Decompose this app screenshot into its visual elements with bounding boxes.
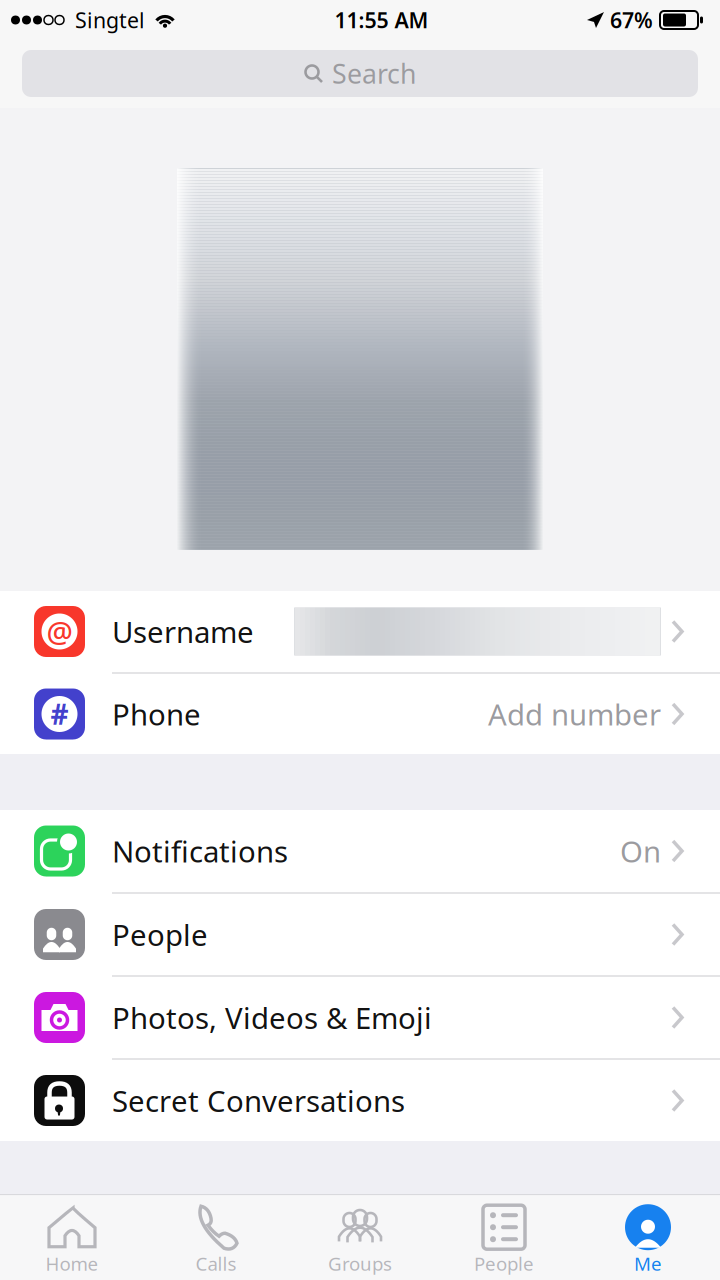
staticText: # (50, 695, 68, 733)
staticText: Secret Conversations (112, 1081, 405, 1120)
staticText: Search (332, 56, 416, 91)
button[interactable]: Home (0, 1195, 144, 1280)
staticText: Phone (112, 694, 201, 733)
button[interactable]: Notifications (0, 810, 720, 892)
staticText: Photos, Videos & Emoji (112, 998, 432, 1037)
staticText: @ (46, 612, 72, 651)
staticText: 11:55 AM (334, 6, 428, 34)
staticText: Home (45, 1251, 98, 1276)
button[interactable]: Groups (288, 1195, 432, 1280)
staticText: On (620, 831, 661, 870)
staticText: Notifications (112, 831, 288, 870)
button[interactable]: Photos, Videos & Emoji (0, 977, 720, 1058)
button[interactable]: People (432, 1195, 576, 1280)
button[interactable]: Calls (144, 1195, 288, 1280)
staticText: Me (634, 1251, 662, 1276)
button[interactable]: Secret Conversations (0, 1060, 720, 1141)
staticText: Calls (195, 1251, 236, 1276)
staticText: Add number (488, 694, 661, 733)
button[interactable]: @ (0, 591, 720, 672)
staticText: 67% (610, 6, 653, 34)
button[interactable]: # (0, 674, 720, 754)
staticText: Username (112, 612, 254, 651)
staticText: People (112, 915, 208, 954)
staticText: People (474, 1251, 534, 1276)
button[interactable]: People (0, 894, 720, 975)
button[interactable]: Search (22, 50, 698, 97)
button[interactable]: Me (576, 1195, 720, 1280)
staticText: Groups (328, 1251, 392, 1276)
staticText: Singtel (75, 6, 145, 34)
